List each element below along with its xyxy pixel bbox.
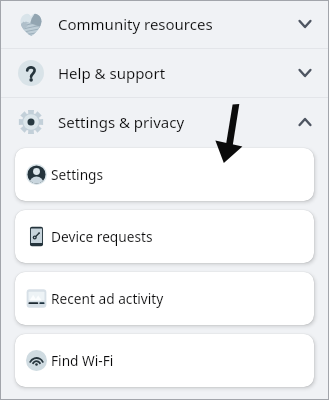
staticText: Recent ad activity	[51, 289, 164, 308]
button[interactable]: Settings	[15, 148, 314, 201]
staticText: Find Wi-Fi	[51, 351, 114, 370]
staticText: Settings	[51, 165, 104, 184]
staticText: Device requests	[51, 227, 153, 246]
other: Expand	[293, 12, 317, 36]
other: Collapse	[293, 110, 317, 134]
button[interactable]: Recent ad activity	[15, 272, 314, 325]
staticText: Community resources	[58, 14, 213, 34]
button[interactable]: Help & support	[0, 49, 329, 97]
button[interactable]: Device requests	[15, 210, 314, 263]
staticText: Settings & privacy	[58, 112, 185, 132]
button[interactable]: Community resources	[0, 0, 329, 48]
button[interactable]: Settings & privacy	[0, 98, 329, 146]
other: Expand	[293, 61, 317, 85]
staticText: Help & support	[58, 63, 166, 83]
button[interactable]: Find Wi-Fi	[15, 334, 314, 387]
